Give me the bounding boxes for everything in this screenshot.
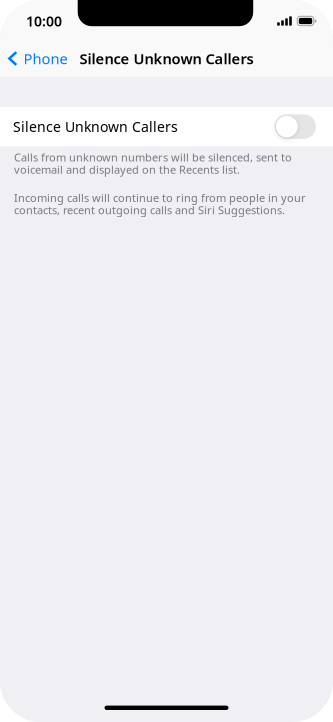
staticText: Silence Unknown Callers <box>13 117 178 136</box>
staticText: Incoming calls will continue to ring fro… <box>14 192 306 216</box>
staticText: 10:00 <box>26 11 62 31</box>
staticText: Phone <box>24 48 68 68</box>
staticText: Silence Unknown Callers <box>79 48 253 68</box>
staticText: Calls from unknown numbers will be silen… <box>14 151 292 176</box>
button[interactable]: Silence Unknown Callers <box>0 107 333 146</box>
button[interactable]: Phone <box>0 40 76 77</box>
